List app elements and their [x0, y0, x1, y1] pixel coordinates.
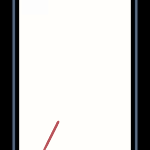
button[interactable]: Notes canvas	[0, 0, 150, 150]
